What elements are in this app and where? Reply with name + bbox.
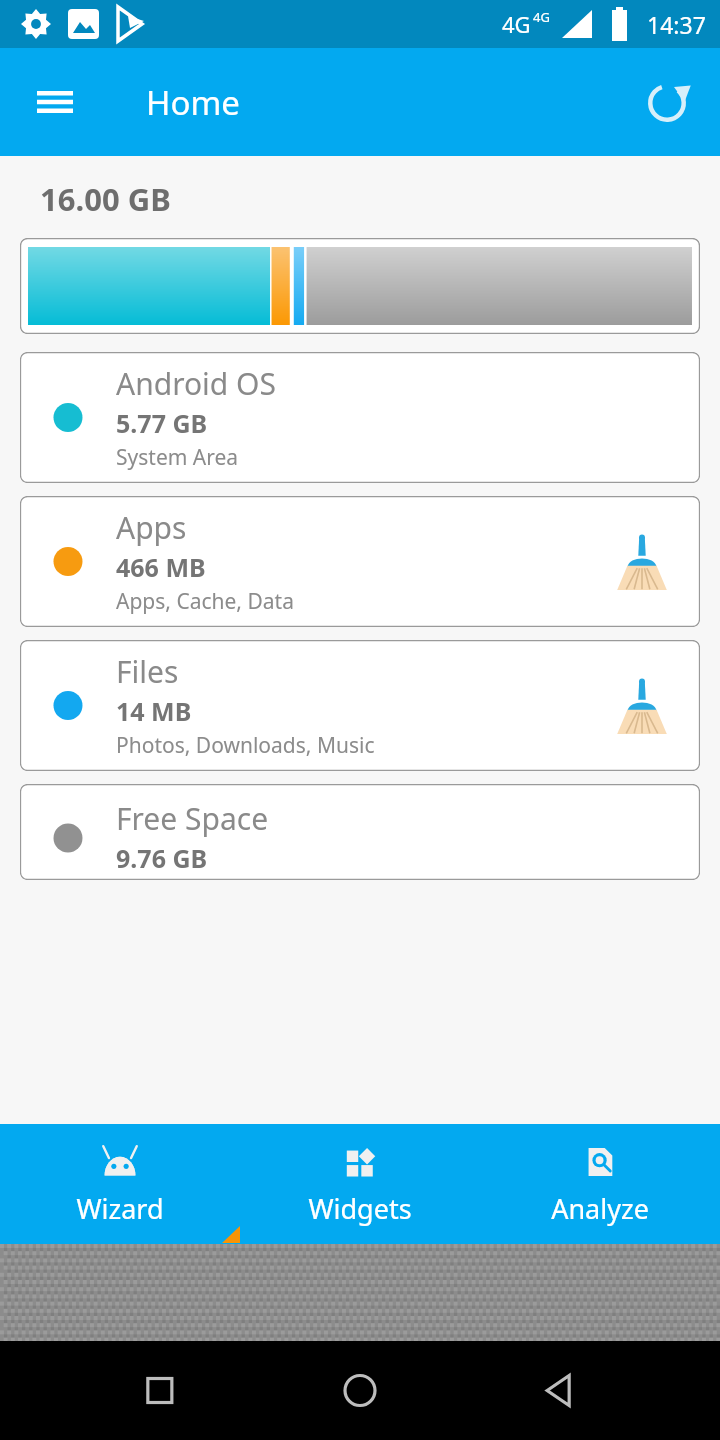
- staticText: 14 MB: [116, 694, 192, 728]
- button[interactable]: Clean Files: [606, 670, 678, 742]
- button[interactable]: Wizard: [0, 1124, 240, 1244]
- staticText: 4G: [533, 8, 550, 26]
- button[interactable]: [20, 238, 700, 334]
- staticText: 4G: [502, 9, 531, 39]
- staticText: Widgets: [308, 1190, 412, 1227]
- staticText: 5.77 GB: [116, 406, 208, 440]
- button[interactable]: Free Space: [20, 784, 700, 880]
- button[interactable]: Refresh: [636, 71, 698, 133]
- staticText: System Area: [116, 443, 239, 472]
- staticText: Analyze: [551, 1190, 649, 1227]
- staticText: Files: [116, 651, 179, 692]
- staticText: Apps, Cache, Data: [116, 587, 294, 616]
- staticText: Home: [146, 80, 240, 125]
- staticText: 14:37: [647, 9, 706, 40]
- staticText: 9.76 GB: [116, 841, 208, 875]
- button[interactable]: Analyze: [480, 1124, 720, 1244]
- staticText: 466 MB: [116, 550, 206, 584]
- staticText: Photos, Downloads, Music: [116, 731, 375, 760]
- button[interactable]: Clean Apps: [606, 526, 678, 598]
- staticText: Wizard: [76, 1190, 164, 1227]
- button[interactable]: Widgets: [240, 1124, 480, 1244]
- button[interactable]: Open navigation menu: [26, 73, 84, 131]
- staticText: Free Space: [116, 798, 269, 839]
- staticText: Android OS: [116, 363, 276, 404]
- staticText: 16.00 GB: [40, 178, 171, 220]
- staticText: Apps: [116, 507, 187, 548]
- button[interactable]: Apps: [20, 496, 700, 627]
- button[interactable]: Files: [20, 640, 700, 771]
- button[interactable]: Android OS: [20, 352, 700, 483]
